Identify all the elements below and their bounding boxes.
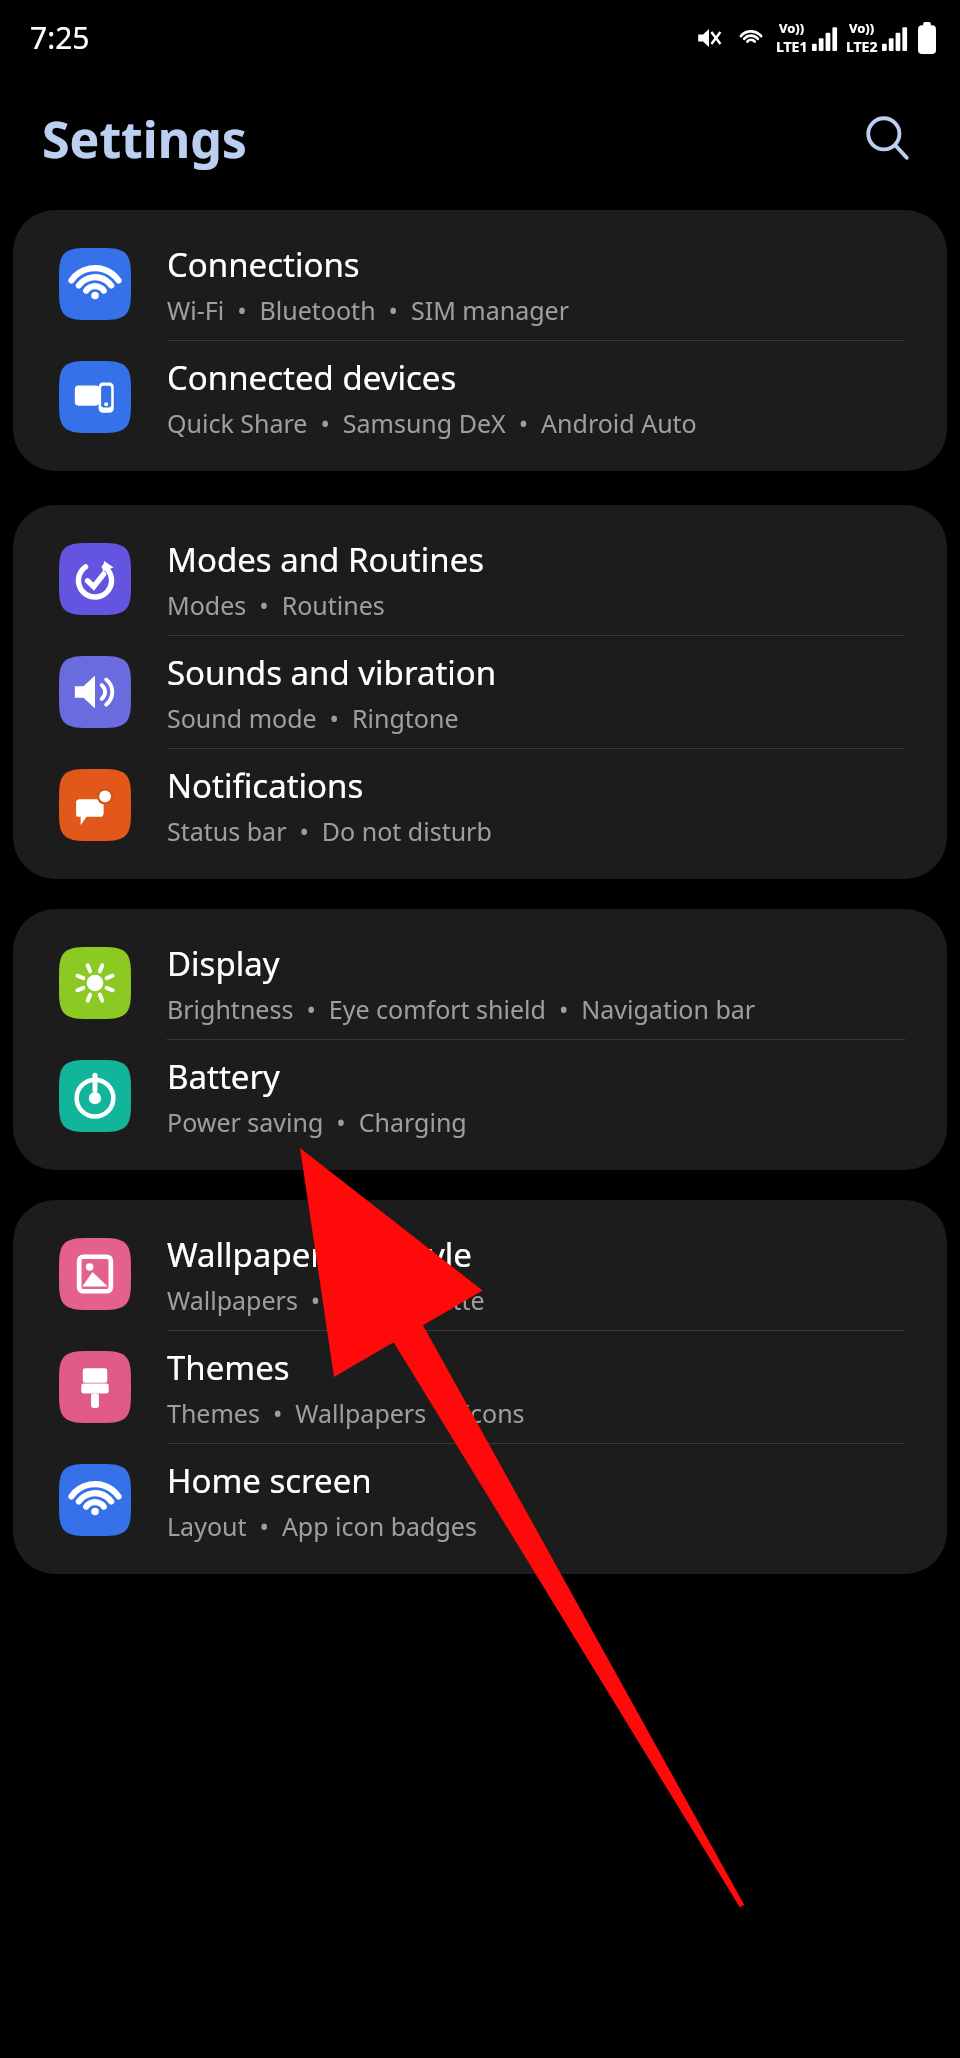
staticText: Themes	[167, 1345, 290, 1390]
staticText: Modes • Routines	[167, 588, 385, 622]
staticText: Themes • Wallpapers • Icons	[167, 1396, 525, 1430]
button[interactable]: Home screen	[13, 1444, 947, 1556]
staticText: Connections	[167, 242, 360, 287]
button[interactable]: Search	[852, 103, 924, 175]
staticText: Wallpaper and style	[167, 1232, 472, 1277]
staticText: LTE2	[846, 37, 878, 56]
staticText: Wallpapers • Color palette	[167, 1283, 485, 1317]
staticText: Quick Share • Samsung DeX • Android Auto	[167, 406, 697, 440]
button[interactable]: Themes	[13, 1331, 947, 1444]
staticText: 7:25	[30, 17, 90, 58]
button[interactable]: Sounds and vibration	[13, 636, 947, 749]
staticText: Home screen	[167, 1458, 372, 1503]
button[interactable]: Connections	[13, 228, 947, 341]
staticText: Modes and Routines	[167, 537, 485, 582]
button[interactable]: Notifications	[13, 749, 947, 861]
staticText: LTE1	[776, 37, 808, 56]
staticText: Display	[167, 941, 280, 986]
staticText: Wi‑Fi • Bluetooth • SIM manager	[167, 293, 570, 327]
staticText: Layout • App icon badges	[167, 1509, 477, 1543]
staticText: Brightness • Eye comfort shield • Naviga…	[167, 992, 756, 1026]
staticText: Connected devices	[167, 355, 457, 400]
button[interactable]: Wallpaper and style	[13, 1218, 947, 1331]
button[interactable]: Modes and Routines	[13, 523, 947, 636]
button[interactable]: Display	[13, 927, 947, 1040]
button[interactable]: Battery	[13, 1040, 947, 1152]
staticText: Vo))	[849, 19, 875, 37]
staticText: Battery	[167, 1054, 280, 1099]
button[interactable]: Connected devices	[13, 341, 947, 453]
staticText: Notifications	[167, 763, 364, 808]
staticText: Sound mode • Ringtone	[167, 701, 459, 735]
staticText: Power saving • Charging	[167, 1105, 467, 1139]
staticText: Sounds and vibration	[167, 650, 497, 695]
staticText: Vo))	[779, 19, 805, 37]
staticText: Settings	[42, 105, 247, 173]
staticText: Status bar • Do not disturb	[167, 814, 492, 848]
